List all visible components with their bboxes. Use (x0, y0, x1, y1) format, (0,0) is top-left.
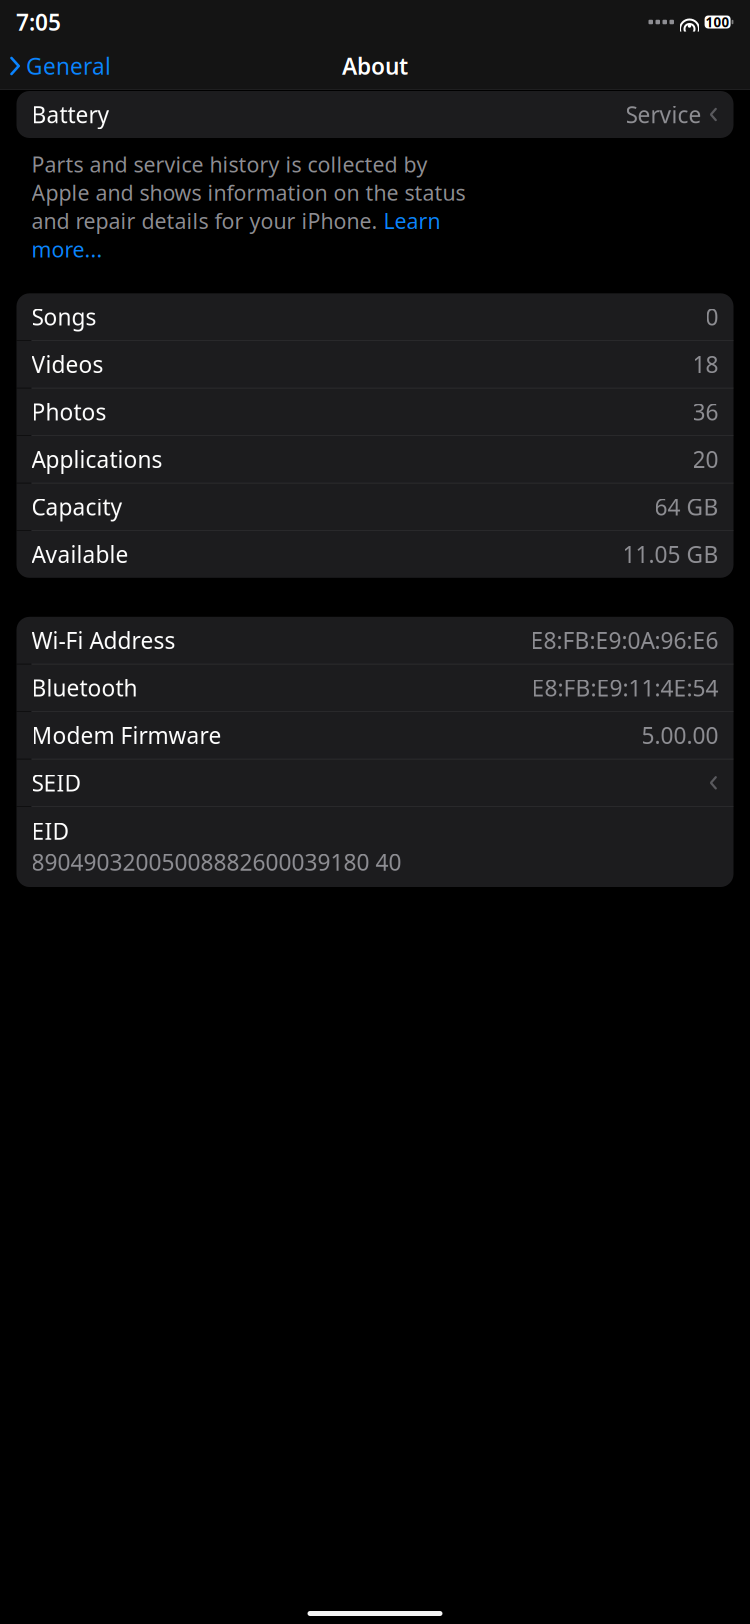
staticText: Photos (31, 397, 106, 427)
staticText: E8:FB:E9:0A:96:E6 (530, 625, 718, 655)
staticText: Parts and service history is collected b… (31, 150, 427, 178)
button[interactable]: Learn (383, 207, 440, 235)
staticText: Modem Firmware (31, 720, 221, 750)
staticText: General (26, 51, 111, 81)
staticText: 20 (692, 444, 718, 474)
staticText: Wi-Fi Address (31, 625, 175, 655)
staticText: 18 (692, 349, 718, 379)
staticText: more... (31, 235, 102, 263)
staticText: 36 (692, 397, 718, 427)
staticText: Learn (383, 207, 440, 235)
staticText: 5.00.00 (641, 720, 718, 750)
staticText: Bluetooth (31, 673, 137, 703)
staticText: SEID (31, 768, 81, 798)
staticText: Videos (31, 349, 103, 379)
staticText: Battery (31, 99, 109, 129)
staticText: 7:05 (16, 7, 61, 37)
staticText: 89049032005008882600039180 40 (31, 847, 401, 877)
staticText: Service (625, 99, 701, 129)
staticText: EID (31, 816, 69, 846)
staticText: Capacity (31, 492, 122, 522)
button[interactable]: General (0, 44, 111, 88)
staticText: Applications (31, 444, 162, 474)
staticText: Songs (31, 302, 96, 332)
staticText: 64 GB (654, 492, 718, 522)
staticText: E8:FB:E9:11:4E:54 (531, 673, 718, 703)
staticText: Apple and shows information on the statu… (31, 178, 465, 207)
staticText: 0 (705, 302, 718, 332)
button[interactable]: more... (31, 235, 102, 263)
button[interactable]: SEID (16, 759, 733, 806)
staticText: Available (31, 539, 128, 569)
staticText: 100 (706, 13, 730, 31)
staticText: and repair details for your iPhone. (31, 207, 383, 235)
staticText: 11.05 GB (622, 539, 718, 569)
button[interactable]: Battery (16, 91, 733, 138)
staticText: About (342, 51, 408, 81)
